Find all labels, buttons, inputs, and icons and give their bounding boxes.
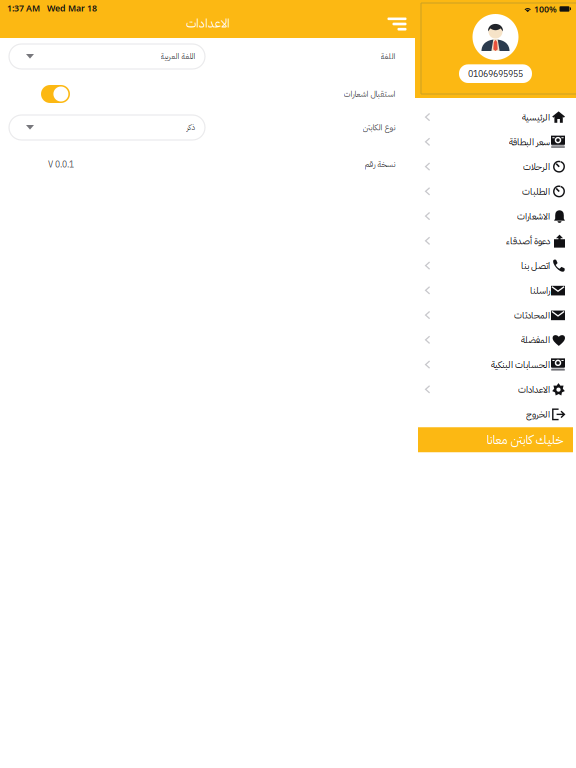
button[interactable]: الطلبات xyxy=(415,179,576,204)
staticText: 1:37 AM xyxy=(7,2,40,14)
staticText: الاشعارات xyxy=(516,209,549,223)
staticText: اللغة xyxy=(380,50,395,63)
staticText: Wed Mar 18 xyxy=(47,2,97,14)
button[interactable]: راسلنا xyxy=(415,278,576,303)
staticText: الرحلات xyxy=(522,160,549,174)
button[interactable]: الاشعارات xyxy=(415,204,576,229)
button[interactable]: اتصل بنا xyxy=(415,253,576,278)
button[interactable]: المحادثات xyxy=(415,303,576,328)
button[interactable]: اللغة العربية xyxy=(9,44,205,69)
button[interactable]: المفضلة xyxy=(415,328,576,353)
button[interactable]: ذكر xyxy=(9,115,205,140)
button[interactable]: الحسابات البنكية xyxy=(415,352,576,377)
staticText: نسخة رقم xyxy=(364,158,395,170)
button[interactable]: الرئيسية xyxy=(415,105,576,130)
button[interactable]: Receive notifications xyxy=(41,85,70,103)
button[interactable]: دعوة أصدقاء xyxy=(415,229,576,254)
staticText: استقبال اشعارات xyxy=(343,88,395,100)
staticText: راسلنا xyxy=(529,284,549,298)
staticText: 01069695955 xyxy=(468,68,523,79)
button[interactable]: خليك كابتن معانا xyxy=(418,427,573,452)
button[interactable]: Menu xyxy=(382,11,412,37)
staticText: الرئيسية xyxy=(521,110,549,124)
staticText: اتصل بنا xyxy=(520,259,549,273)
staticText: اللغة العربية xyxy=(160,51,195,62)
staticText: الاعدادات xyxy=(185,14,229,33)
button[interactable]: الرحلات xyxy=(415,154,576,179)
staticText: 100% xyxy=(534,3,557,15)
staticText: ذكر xyxy=(186,122,195,133)
staticText: الخروج xyxy=(525,407,549,421)
staticText: الطلبات xyxy=(521,185,549,199)
staticText: خليك كابتن معانا xyxy=(486,430,563,449)
staticText: V 0.0.1 xyxy=(48,159,74,170)
staticText: سعر البطاقة xyxy=(508,135,549,149)
button[interactable]: الاعدادات xyxy=(415,377,576,402)
staticText: الاعدادات xyxy=(517,383,549,397)
staticText: الحسابات البنكية xyxy=(490,358,549,372)
staticText: نوع الكابتن xyxy=(362,121,395,134)
staticText: المحادثات xyxy=(513,308,549,322)
staticText: المفضلة xyxy=(520,333,549,347)
button[interactable]: الخروج xyxy=(415,402,576,427)
staticText: دعوة أصدقاء xyxy=(505,234,549,248)
button[interactable]: سعر البطاقة xyxy=(415,130,576,155)
